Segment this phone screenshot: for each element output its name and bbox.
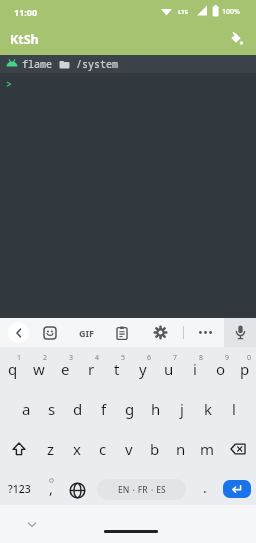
- button[interactable]: [191, 318, 220, 347]
- button[interactable]: b: [142, 427, 168, 467]
- staticText: q: [8, 359, 18, 379]
- staticText: 1: [17, 353, 22, 363]
- button[interactable]: w: [26, 347, 52, 387]
- button[interactable]: s: [39, 387, 65, 427]
- button[interactable]: ,: [38, 467, 64, 505]
- button[interactable]: k: [195, 387, 221, 427]
- staticText: j: [180, 399, 184, 419]
- staticText: /system: [76, 57, 118, 71]
- staticText: g: [125, 399, 135, 419]
- staticText: u: [164, 359, 174, 379]
- staticText: EN・FR・ES: [118, 484, 166, 496]
- button[interactable]: e: [52, 347, 78, 387]
- staticText: r: [88, 359, 95, 379]
- staticText: l: [232, 399, 236, 419]
- button[interactable]: g: [117, 387, 143, 427]
- button[interactable]: y: [130, 347, 156, 387]
- button[interactable]: [64, 467, 90, 505]
- staticText: 3: [69, 353, 74, 363]
- button[interactable]: a: [13, 387, 39, 427]
- staticText: k: [204, 399, 213, 419]
- staticText: ?123: [8, 482, 31, 496]
- staticText: o: [216, 359, 226, 379]
- button[interactable]: v: [116, 427, 142, 467]
- button[interactable]: [35, 318, 64, 347]
- staticText: 11:00: [14, 6, 38, 18]
- staticText: s: [48, 399, 56, 419]
- button[interactable]: [218, 467, 256, 505]
- staticText: 0: [247, 353, 252, 363]
- staticText: e: [61, 359, 70, 379]
- button[interactable]: d: [65, 387, 91, 427]
- staticText: v: [125, 439, 133, 459]
- staticText: m: [200, 439, 215, 459]
- button[interactable]: c: [90, 427, 116, 467]
- staticText: KtSh: [10, 31, 39, 48]
- staticText: t: [114, 359, 120, 379]
- button[interactable]: u: [156, 347, 182, 387]
- staticText: 7: [173, 353, 178, 363]
- button[interactable]: x: [64, 427, 90, 467]
- button[interactable]: o: [208, 347, 234, 387]
- staticText: c: [99, 439, 107, 459]
- staticText: 6: [147, 353, 152, 363]
- button[interactable]: [146, 318, 175, 347]
- button[interactable]: f: [91, 387, 117, 427]
- staticText: LTE: [178, 8, 189, 16]
- staticText: 2: [43, 353, 48, 363]
- button[interactable]: l: [221, 387, 247, 427]
- button[interactable]: i: [182, 347, 208, 387]
- staticText: y: [139, 359, 147, 379]
- staticText: i: [193, 359, 197, 379]
- staticText: 8: [199, 353, 204, 363]
- button[interactable]: q: [0, 347, 26, 387]
- staticText: z: [47, 439, 55, 459]
- button[interactable]: n: [168, 427, 194, 467]
- staticText: x: [73, 439, 81, 459]
- staticText: p: [240, 359, 250, 379]
- staticText: ,: [49, 479, 53, 498]
- button[interactable]: m: [194, 427, 220, 467]
- staticText: 9: [225, 353, 230, 363]
- staticText: >: [6, 77, 12, 91]
- button[interactable]: [0, 427, 38, 467]
- staticText: 5: [121, 353, 126, 363]
- staticText: 4: [95, 353, 100, 363]
- staticText: a: [22, 399, 31, 419]
- staticText: h: [151, 399, 161, 419]
- staticText: 100%: [222, 7, 240, 17]
- button[interactable]: [222, 25, 250, 53]
- staticText: b: [150, 439, 160, 459]
- staticText: flame: [22, 57, 52, 71]
- staticText: n: [176, 439, 186, 459]
- button[interactable]: .: [192, 467, 218, 505]
- button[interactable]: [107, 318, 136, 347]
- button[interactable]: z: [38, 427, 64, 467]
- button[interactable]: [226, 318, 255, 347]
- staticText: GIF: [79, 327, 94, 339]
- button[interactable]: [220, 427, 256, 467]
- button[interactable]: ?123: [0, 467, 38, 505]
- button[interactable]: [8, 322, 29, 343]
- staticText: w: [33, 359, 45, 379]
- staticText: .: [203, 478, 207, 497]
- button[interactable]: j: [169, 387, 195, 427]
- button[interactable]: GIF: [72, 318, 101, 347]
- button[interactable]: t: [104, 347, 130, 387]
- button[interactable]: EN・FR・ES: [90, 467, 192, 505]
- button[interactable]: h: [143, 387, 169, 427]
- button[interactable]: r: [78, 347, 104, 387]
- staticText: f: [101, 399, 107, 419]
- button[interactable]: p: [234, 347, 256, 387]
- staticText: d: [73, 399, 83, 419]
